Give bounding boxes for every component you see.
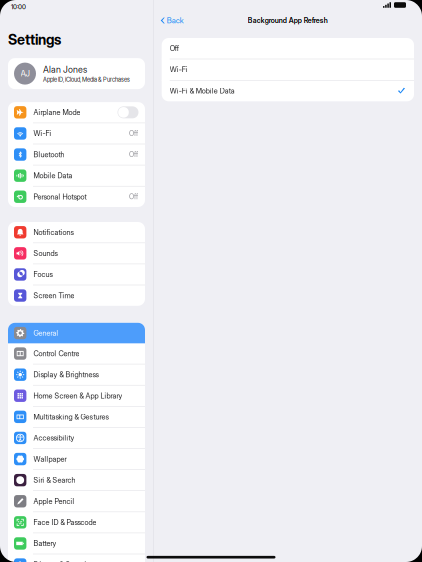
staticText: Screen Time [33, 291, 74, 300]
button[interactable]: Bluetooth [8, 144, 145, 165]
staticText: Airplane Mode [33, 108, 80, 117]
button[interactable]: AJ [0, 58, 153, 89]
staticText: Wi-Fi [170, 65, 188, 74]
staticText: Focus [33, 270, 52, 279]
button[interactable]: Privacy & Security [8, 554, 145, 562]
staticText: Off [129, 150, 138, 159]
staticText: General [33, 329, 58, 337]
staticText: Notifications [33, 228, 73, 237]
button[interactable]: Airplane Mode [8, 102, 145, 123]
staticText: Wi-Fi & Mobile Data [170, 86, 235, 95]
button[interactable]: Siri & Search [8, 470, 145, 490]
staticText: Display & Brightness [33, 370, 98, 379]
staticText: Battery [33, 539, 56, 548]
button[interactable]: Personal Hotspot [8, 186, 145, 207]
button[interactable]: Wi-Fi [8, 123, 145, 144]
staticText: Wi-Fi [33, 129, 51, 138]
button[interactable]: Wi-Fi & Mobile Data [162, 81, 414, 101]
staticText: Personal Hotspot [33, 192, 86, 201]
staticText: Face ID & Passcode [33, 518, 96, 527]
button[interactable]: General [8, 323, 145, 343]
staticText: Settings [8, 31, 61, 48]
button[interactable]: Notifications [8, 222, 145, 242]
button[interactable]: Multitasking & Gestures [8, 407, 145, 427]
staticText: Alan Jones [43, 64, 87, 75]
staticText: Wallpaper [33, 455, 66, 463]
staticText: Off [170, 44, 179, 53]
staticText: Control Centre [33, 349, 79, 358]
button[interactable]: Home Screen & App Library [8, 385, 145, 406]
staticText: Multitasking & Gestures [33, 412, 108, 421]
button[interactable]: Display & Brightness [8, 364, 145, 385]
staticText: 10:00 [11, 3, 26, 11]
button[interactable]: Control Centre [8, 343, 145, 364]
button[interactable]: Sounds [8, 243, 145, 264]
staticText: Apple ID, iCloud, Media & Purchases [43, 76, 130, 83]
staticText: Accessibility [33, 433, 74, 442]
staticText: Off [129, 193, 138, 201]
staticText: Apple Pencil [33, 497, 74, 506]
staticText: Back [167, 16, 184, 25]
button[interactable]: Apple Pencil [8, 491, 145, 511]
staticText: Mobile Data [33, 171, 72, 180]
button[interactable]: Mobile Data [8, 165, 145, 186]
button[interactable]: Accessibility [8, 428, 145, 448]
button[interactable]: Back [154, 12, 184, 29]
staticText: Privacy & Security [33, 560, 92, 562]
button[interactable]: Face ID & Passcode [8, 512, 145, 533]
button[interactable]: Wallpaper [8, 449, 145, 469]
button[interactable]: Screen Time [8, 285, 145, 306]
button[interactable]: Battery [8, 533, 145, 554]
button[interactable]: Off [162, 38, 414, 59]
staticText: Home Screen & App Library [33, 391, 122, 400]
staticText: Sounds [33, 249, 57, 258]
staticText: Off [129, 129, 138, 138]
staticText: Bluetooth [33, 150, 64, 159]
staticText: Siri & Search [33, 476, 75, 485]
button[interactable]: Wi-Fi [162, 59, 414, 80]
staticText: Background App Refresh [248, 16, 328, 25]
button[interactable]: Focus [8, 264, 145, 285]
staticText: AJ [20, 69, 29, 79]
